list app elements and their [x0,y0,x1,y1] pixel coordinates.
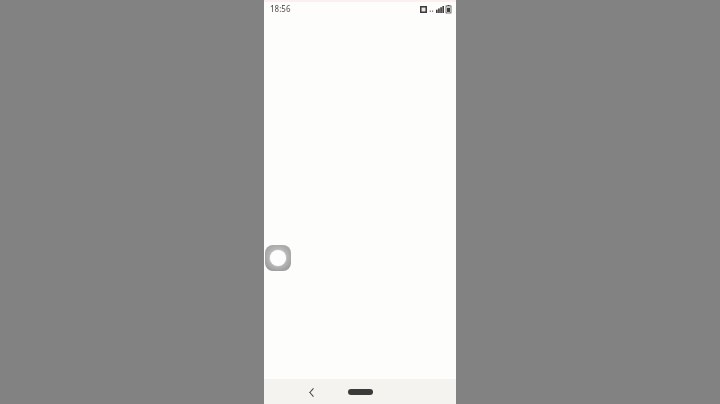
button[interactable]: Back [300,381,322,403]
button[interactable]: Assistive touch button [265,245,291,271]
staticText: 18:56 [270,3,291,14]
button[interactable]: Home [340,381,380,403]
